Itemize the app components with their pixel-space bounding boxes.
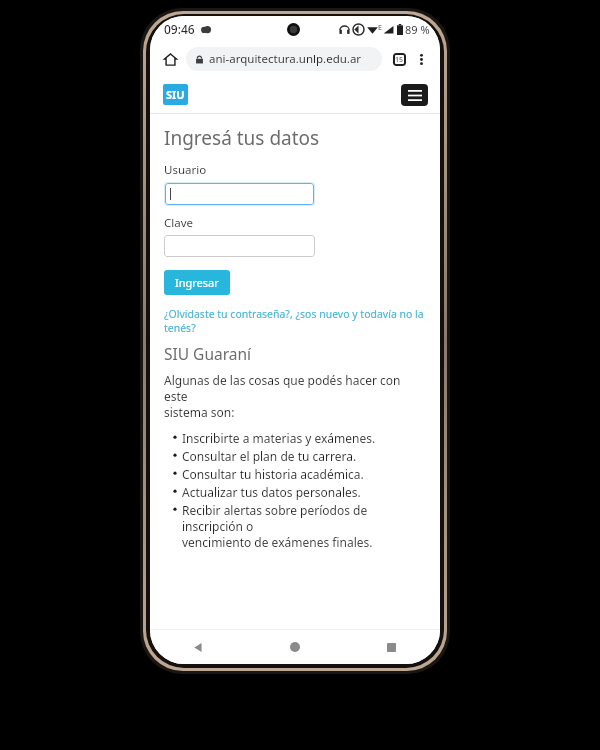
button[interactable] xyxy=(164,235,315,257)
button[interactable]: Menu xyxy=(401,84,428,106)
button[interactable]: Back xyxy=(150,630,246,664)
staticText: Algunas de las cosas que podés hacer con… xyxy=(164,372,426,420)
staticText: SIU xyxy=(166,87,185,102)
staticText: 89 % xyxy=(405,22,430,37)
button[interactable]: Ingresar xyxy=(164,270,230,295)
staticText: Actualizar tus datos personales. xyxy=(182,484,361,500)
button[interactable]: Tabs xyxy=(388,48,410,70)
button[interactable] xyxy=(165,183,314,205)
staticText: Inscribirte a materias y exámenes. xyxy=(182,430,376,446)
button[interactable]: Home xyxy=(158,47,182,71)
staticText: Ingresá tus datos xyxy=(164,125,320,151)
button[interactable]: Recent apps xyxy=(343,630,440,664)
staticText: Consultar tu historia académica. xyxy=(182,466,364,482)
staticText: Recibir alertas sobre períodos de inscri… xyxy=(182,502,426,550)
button[interactable]: ani-arquitectura.unlp.edu.ar xyxy=(186,47,382,71)
staticText: Usuario xyxy=(164,162,207,178)
button[interactable]: More options xyxy=(410,48,432,70)
staticText: Ingresar xyxy=(175,275,219,290)
staticText: ¿Olvidaste tu contraseña?, ¿sos nuevo y … xyxy=(164,307,426,335)
button[interactable]: SIU xyxy=(163,84,188,105)
button[interactable]: Home xyxy=(246,630,343,664)
staticText: Consultar el plan de tu carrera. xyxy=(182,448,357,464)
staticText: SIU Guaraní xyxy=(164,343,252,364)
staticText: Clave xyxy=(164,215,194,231)
staticText: 15 xyxy=(395,55,404,65)
staticText: E xyxy=(378,23,382,33)
staticText: ani-arquitectura.unlp.edu.ar xyxy=(209,51,362,67)
staticText: 09:46 xyxy=(164,21,195,37)
button[interactable]: ¿Olvidaste tu contraseña?, ¿sos nuevo y … xyxy=(164,307,426,335)
